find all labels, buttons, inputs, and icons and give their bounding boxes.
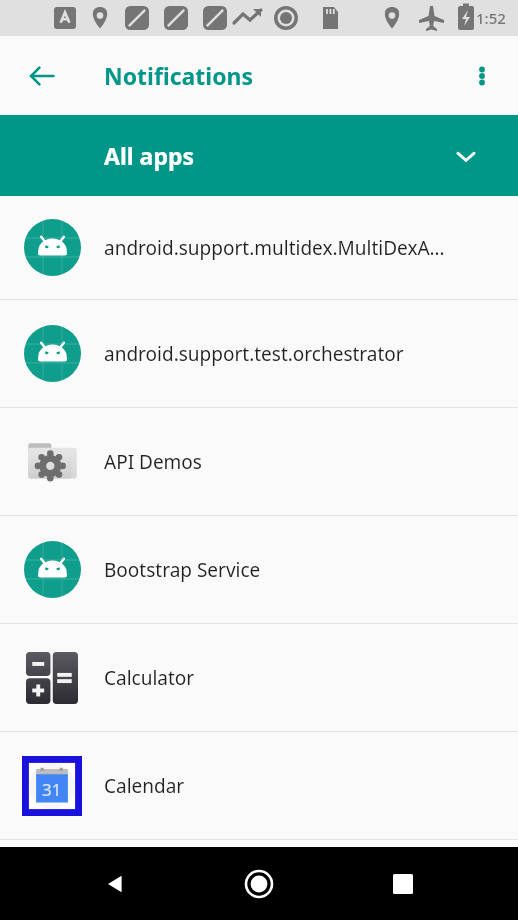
button[interactable]: Bootstrap Service	[0, 516, 518, 623]
staticText: Calculator	[104, 665, 195, 691]
staticText: 1:52	[476, 8, 506, 28]
button[interactable]: 31	[0, 732, 518, 839]
staticText: Calendar	[104, 773, 185, 799]
staticText: android.support.test.orchestrator	[104, 341, 404, 367]
button[interactable]: android.support.multidex.MultiDexA…	[0, 196, 518, 299]
staticText: API Demos	[104, 449, 202, 475]
staticText: 31	[42, 778, 62, 801]
staticText: android.support.multidex.MultiDexA…	[104, 235, 445, 261]
button[interactable]: Navigate up	[14, 48, 70, 104]
button[interactable]: Recent apps	[370, 851, 436, 917]
button[interactable]: Calculator	[0, 624, 518, 731]
button[interactable]: android.support.test.orchestrator	[0, 300, 518, 407]
button[interactable]: API Demos	[0, 408, 518, 515]
button[interactable]: Back	[82, 851, 148, 917]
staticText: All apps	[104, 140, 194, 171]
staticText: Bootstrap Service	[104, 557, 261, 583]
button[interactable]: Home	[226, 851, 292, 917]
staticText: Notifications	[104, 60, 254, 91]
button[interactable]: All apps	[0, 115, 518, 196]
button[interactable]: More options	[456, 50, 508, 102]
